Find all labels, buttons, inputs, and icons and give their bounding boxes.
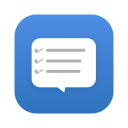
button[interactable]: Messages (14, 14, 113, 113)
